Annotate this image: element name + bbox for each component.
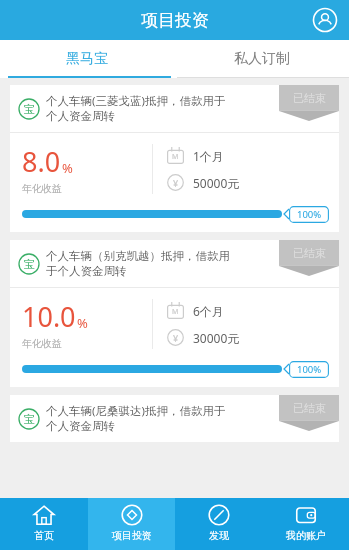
button[interactable]: 宝 bbox=[10, 395, 339, 442]
staticText: 私人订制 bbox=[234, 50, 290, 68]
staticText: 宝 bbox=[24, 257, 35, 271]
staticText: % bbox=[62, 159, 73, 177]
button[interactable]: 私人订制 bbox=[174, 40, 349, 78]
staticText: 100% bbox=[297, 363, 322, 376]
staticText: 首页 bbox=[34, 529, 54, 542]
staticText: 8.0 bbox=[22, 143, 61, 180]
staticText: 个人车辆（别克凯越）抵押，借款用 于个人资金周转 bbox=[46, 249, 230, 279]
staticText: M bbox=[172, 307, 179, 317]
staticText: 50000元 bbox=[193, 175, 240, 191]
button[interactable]: 宝 bbox=[10, 240, 339, 387]
staticText: 发现 bbox=[209, 529, 229, 542]
staticText: 项目投资 bbox=[141, 10, 209, 31]
staticText: 宝 bbox=[24, 102, 35, 116]
staticText: 黑马宝 bbox=[66, 50, 108, 68]
staticText: 宝 bbox=[24, 412, 35, 426]
staticText: 10.0 bbox=[22, 298, 76, 335]
button[interactable]: 宝 bbox=[10, 85, 339, 232]
button[interactable]: 首页 bbox=[0, 498, 88, 550]
button[interactable]: 发现 bbox=[175, 498, 262, 550]
staticText: 已结束 bbox=[293, 91, 326, 105]
button[interactable]: 我的账户 bbox=[262, 498, 349, 550]
staticText: 1个月 bbox=[193, 148, 224, 164]
staticText: % bbox=[77, 314, 88, 332]
staticText: 已结束 bbox=[293, 401, 326, 415]
staticText: 我的账户 bbox=[286, 529, 326, 542]
staticText: 已结束 bbox=[293, 246, 326, 260]
staticText: 个人车辆(三菱戈蓝)抵押，借款用于 个人资金周转 bbox=[46, 93, 226, 124]
staticText: ¥ bbox=[173, 332, 179, 344]
staticText: 100% bbox=[297, 208, 322, 221]
staticText: 项目投资 bbox=[112, 529, 152, 542]
staticText: 个人车辆(尼桑骐达)抵押，借款用于 个人资金周转 bbox=[46, 403, 226, 434]
button[interactable]: 黑马宝 bbox=[0, 40, 174, 78]
button[interactable]: 项目投资 bbox=[88, 498, 175, 550]
staticText: 年化收益 bbox=[22, 337, 62, 350]
staticText: 年化收益 bbox=[22, 182, 62, 195]
staticText: ¥ bbox=[173, 177, 179, 189]
staticText: M bbox=[172, 152, 179, 162]
staticText: 6个月 bbox=[193, 303, 224, 319]
staticText: 30000元 bbox=[193, 330, 240, 346]
button[interactable]: Profile bbox=[310, 5, 340, 35]
